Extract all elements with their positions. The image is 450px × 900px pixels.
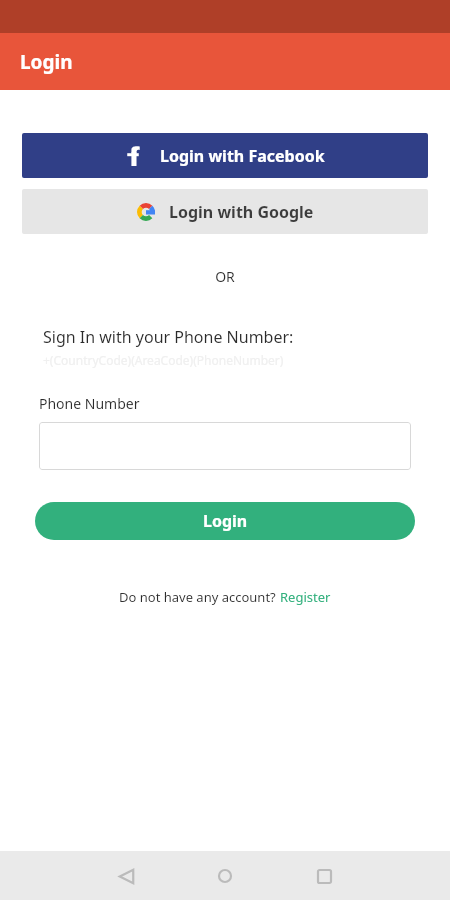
staticText: Login with Google: [169, 201, 314, 223]
staticText: Register: [280, 588, 331, 606]
button[interactable]: Recent apps: [300, 852, 348, 900]
button[interactable]: Login with Facebook: [22, 133, 428, 178]
staticText: OR: [0, 267, 450, 286]
staticText: +(CountryCode)(AreaCode)(PhoneNumber): [43, 352, 284, 368]
button[interactable]: Home: [201, 852, 249, 900]
staticText: Login: [203, 510, 248, 532]
button[interactable]: [39, 422, 411, 470]
button[interactable]: Login: [35, 502, 415, 540]
button[interactable]: Back: [102, 852, 150, 900]
button[interactable]: Login with Google: [22, 189, 428, 234]
staticText: Do not have any account?: [119, 588, 280, 606]
staticText: Sign In with your Phone Number:: [43, 326, 294, 348]
staticText: Login with Facebook: [160, 145, 325, 167]
staticText: Phone Number: [39, 394, 140, 413]
staticText: Login: [20, 49, 73, 75]
button[interactable]: Register: [280, 588, 331, 606]
